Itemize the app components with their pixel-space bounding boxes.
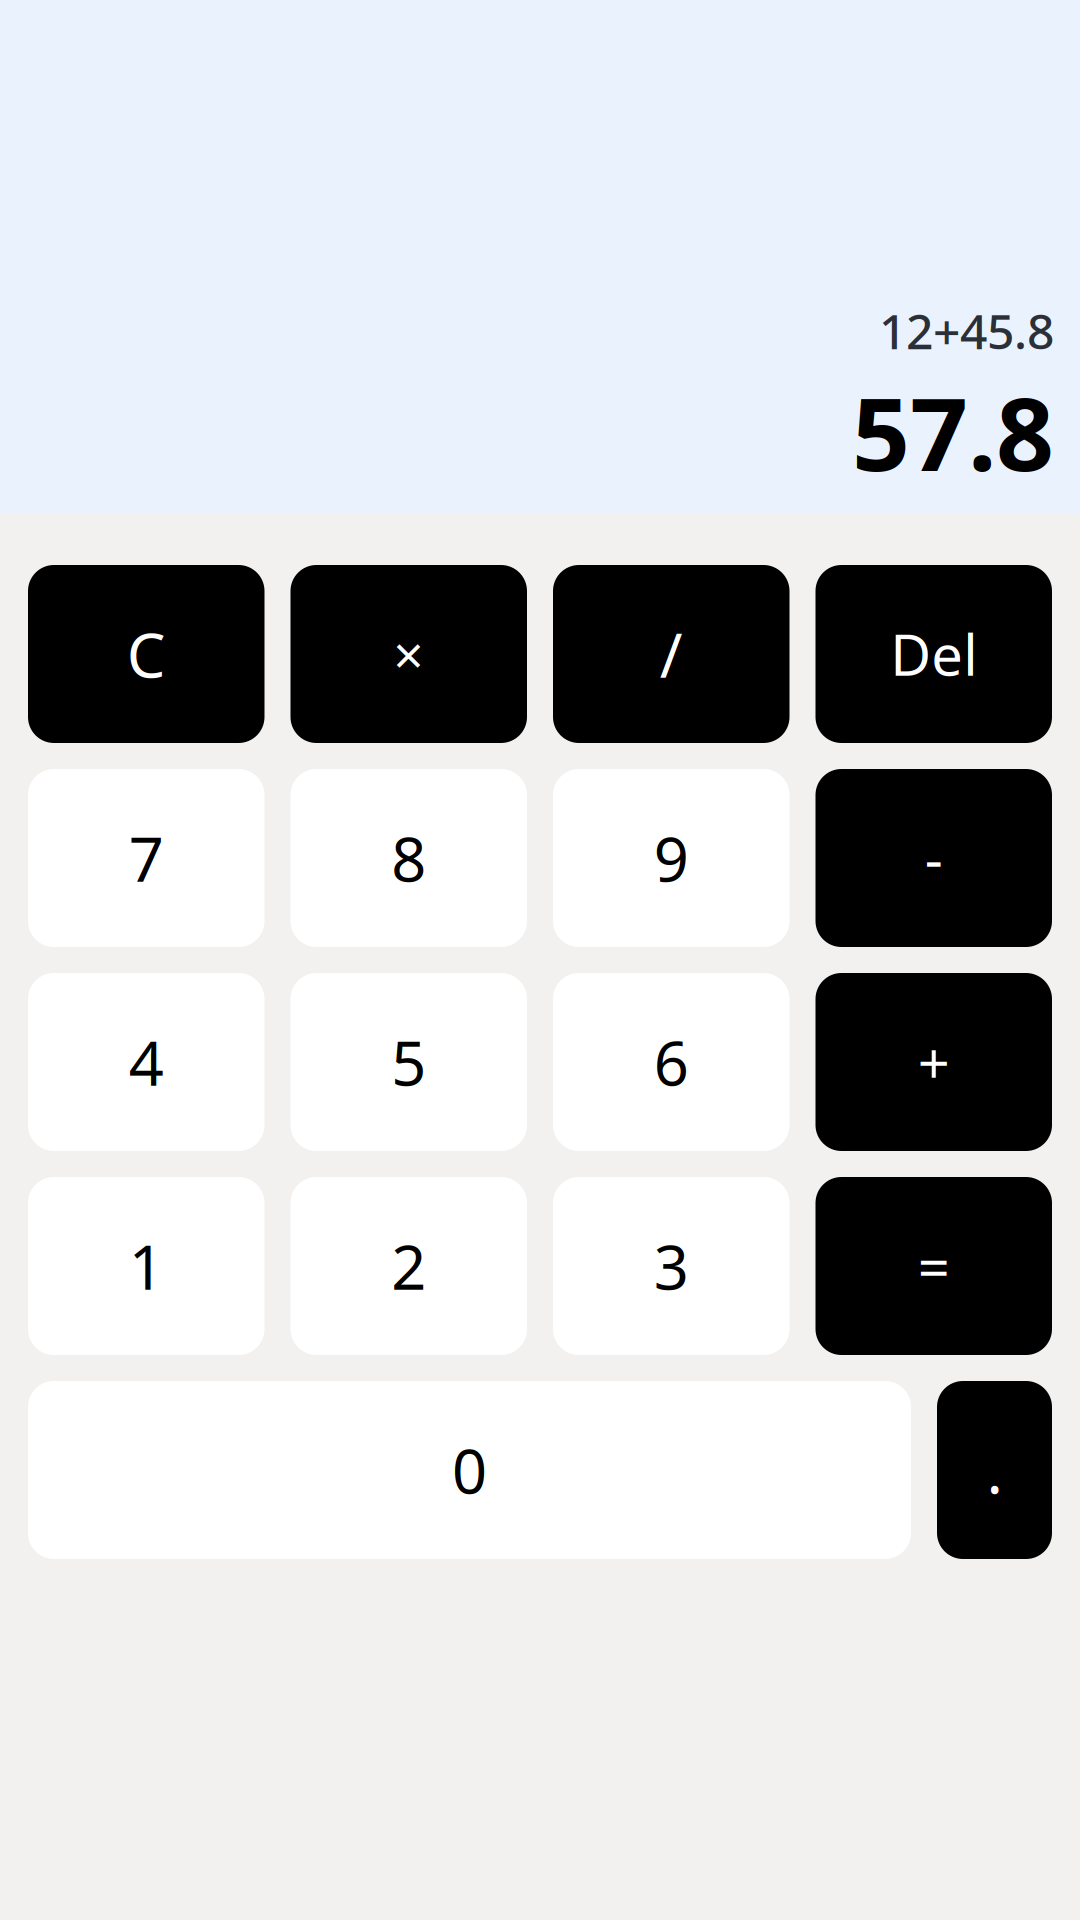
button[interactable]: 8: [290, 769, 527, 947]
button[interactable]: 1: [28, 1177, 264, 1355]
button[interactable]: C: [28, 565, 264, 743]
button[interactable]: 6: [553, 973, 789, 1151]
staticText: =: [918, 1229, 950, 1303]
staticText: 0: [452, 1429, 487, 1511]
button[interactable]: 5: [290, 973, 527, 1151]
button[interactable]: +: [815, 973, 1052, 1151]
staticText: 57.8: [852, 364, 1054, 499]
button[interactable]: 9: [553, 769, 789, 947]
staticText: ×: [393, 619, 424, 689]
staticText: 8: [391, 817, 426, 899]
staticText: 3: [654, 1225, 689, 1307]
staticText: Del: [890, 617, 977, 691]
button[interactable]: .: [937, 1381, 1052, 1559]
staticText: 4: [129, 1021, 164, 1103]
button[interactable]: 0: [28, 1381, 911, 1559]
staticText: 6: [654, 1021, 689, 1103]
button[interactable]: 4: [28, 973, 264, 1151]
staticText: 9: [654, 817, 689, 899]
staticText: 2: [391, 1225, 426, 1307]
button[interactable]: 7: [28, 769, 264, 947]
staticText: /: [660, 613, 683, 695]
staticText: 1: [129, 1225, 164, 1307]
staticText: 5: [391, 1021, 426, 1103]
button[interactable]: Del: [815, 565, 1052, 743]
staticText: C: [127, 613, 166, 695]
staticText: 7: [129, 817, 164, 899]
staticText: 12+45.8: [879, 299, 1054, 362]
staticText: -: [925, 821, 943, 895]
button[interactable]: -: [815, 769, 1052, 947]
button[interactable]: 3: [553, 1177, 789, 1355]
button[interactable]: 2: [290, 1177, 527, 1355]
staticText: +: [918, 1025, 950, 1099]
button[interactable]: =: [815, 1177, 1052, 1355]
staticText: .: [986, 1429, 1002, 1511]
button[interactable]: /: [553, 565, 789, 743]
button[interactable]: ×: [290, 565, 527, 743]
